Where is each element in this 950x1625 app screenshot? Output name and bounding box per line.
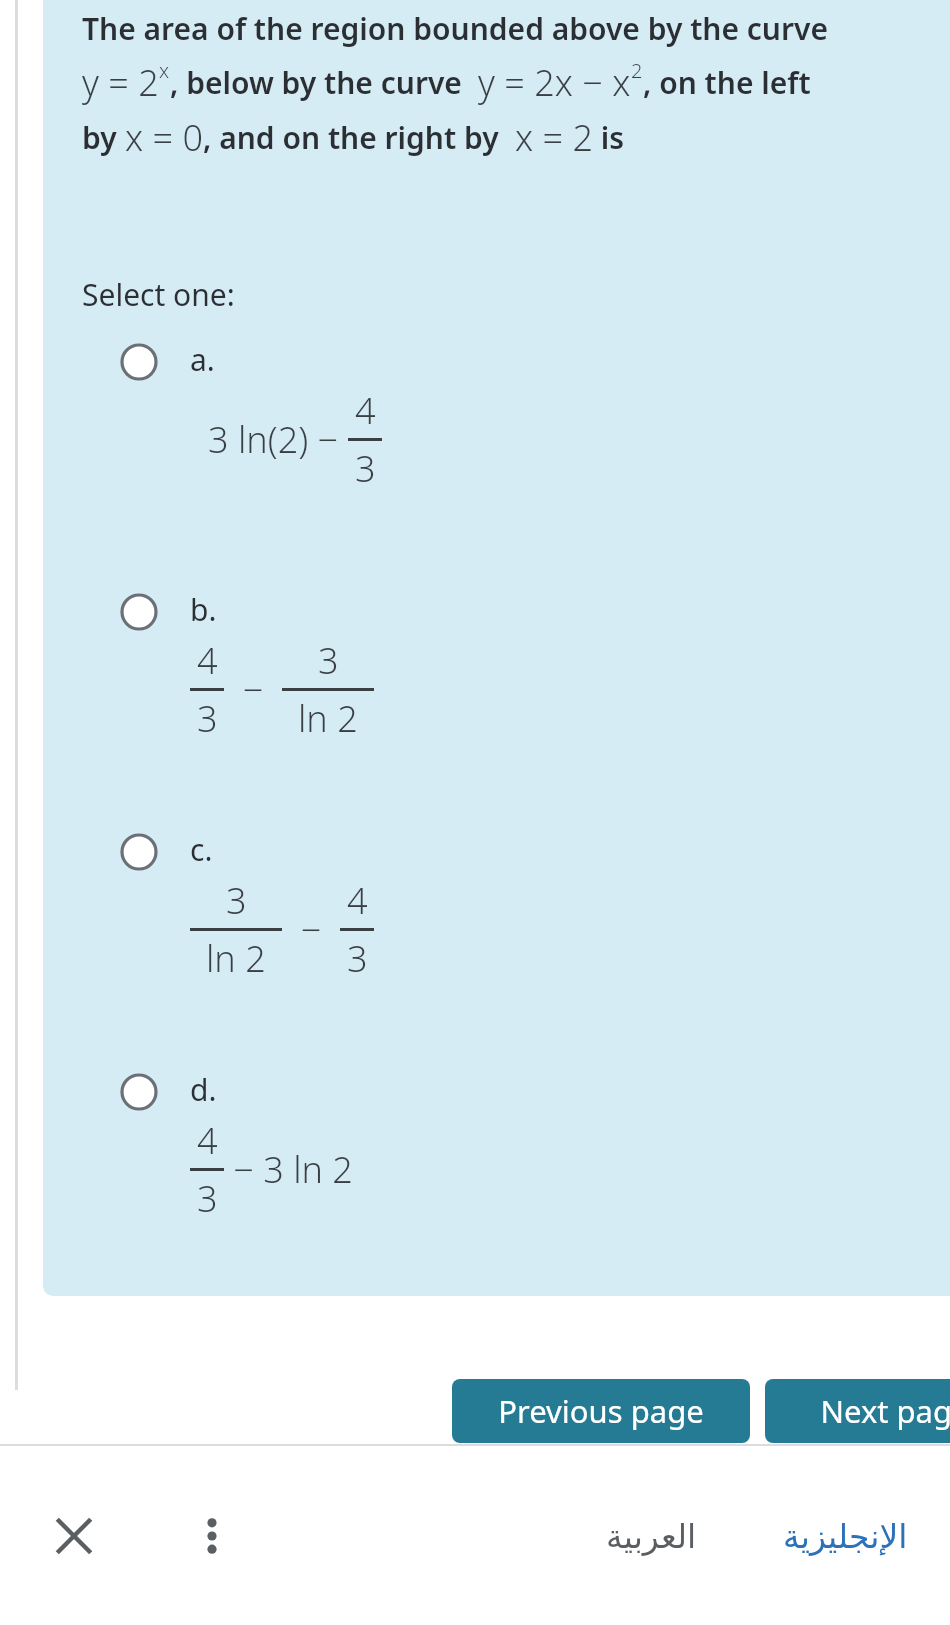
staticText: is (593, 117, 625, 158)
staticText: x (159, 57, 170, 84)
staticText: The area of the region bounded above by … (82, 8, 828, 49)
staticText: Select one: (82, 274, 235, 315)
staticText: 4 (197, 636, 218, 685)
button[interactable]: d. (82, 1069, 950, 1223)
staticText: الإنجليزية (783, 1517, 908, 1555)
staticText: , and on the right by (203, 117, 515, 158)
staticText: b. (190, 589, 217, 630)
staticText: Previous page (498, 1390, 704, 1432)
staticText: y = 2x − x (478, 58, 631, 107)
staticText: x = 0 (125, 113, 203, 162)
button[interactable]: More options (164, 1488, 260, 1584)
staticText: a. (190, 339, 215, 380)
button[interactable]: Previous page (452, 1379, 750, 1443)
staticText: x = 2 (515, 113, 593, 162)
button[interactable]: Next page (765, 1379, 950, 1443)
staticText: 4 (197, 1116, 218, 1165)
staticText: c. (190, 829, 213, 870)
staticText: 3 ln(2) − (208, 415, 348, 464)
button[interactable]: b. (82, 589, 950, 743)
staticText: 3 (226, 876, 247, 925)
staticText: 4 (347, 876, 368, 925)
button[interactable]: العربية (586, 1501, 717, 1571)
staticText: − (282, 905, 340, 954)
staticText: 3 (318, 636, 339, 685)
staticText: ln 2 (206, 934, 266, 983)
button[interactable]: a. (82, 339, 950, 493)
staticText: 3 (347, 934, 368, 983)
staticText: Next page (820, 1390, 950, 1432)
staticText: by (82, 117, 125, 158)
staticText: y = 2 (82, 58, 159, 107)
staticText: − 3 ln 2 (224, 1145, 353, 1194)
staticText: 3 (197, 694, 218, 743)
staticText: 4 (355, 386, 376, 435)
button[interactable]: الإنجليزية (763, 1501, 928, 1571)
button[interactable]: c. (82, 829, 950, 983)
staticText: 3 (355, 444, 376, 493)
staticText: ln 2 (298, 694, 358, 743)
staticText: d. (190, 1069, 217, 1110)
staticText: − (224, 665, 282, 714)
staticText: , on the left (643, 62, 811, 103)
staticText: 3 (197, 1174, 218, 1223)
staticText: , below by the curve (170, 62, 478, 103)
staticText: العربية (606, 1517, 697, 1555)
button[interactable]: Close (26, 1488, 122, 1584)
staticText: 2 (631, 57, 643, 84)
